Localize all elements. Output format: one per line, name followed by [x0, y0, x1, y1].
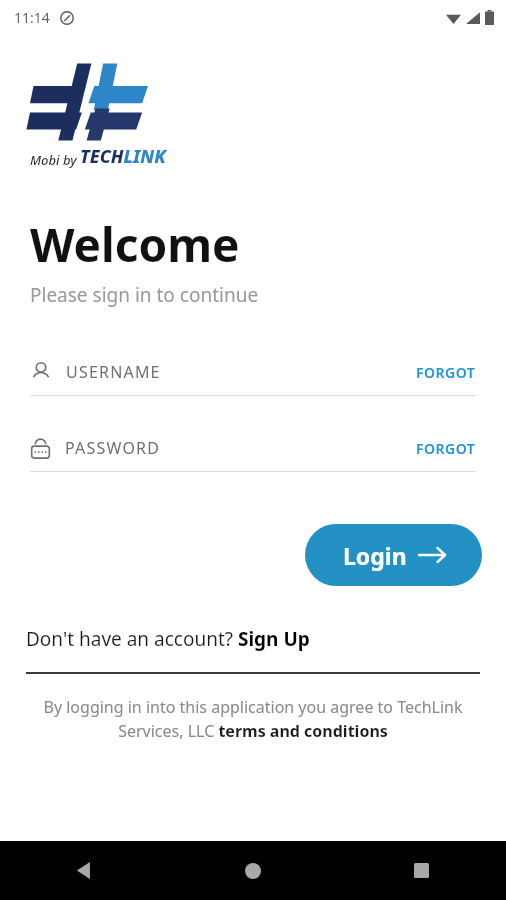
staticText: Login [343, 540, 407, 571]
button[interactable]: By logging in into this application you … [30, 696, 476, 742]
staticText: FORGOT [416, 363, 476, 382]
staticText: PASSWORD [65, 437, 161, 459]
staticText: By logging in into this application you … [30, 696, 476, 742]
staticText: Don't have an account? Sign Up [26, 626, 310, 652]
button[interactable]: Password [30, 436, 476, 472]
staticText: FORGOT [416, 439, 476, 458]
button[interactable]: FORGOT [416, 439, 476, 458]
other: Username [30, 360, 52, 384]
staticText: TECHLINK [80, 144, 166, 169]
button[interactable]: Username [30, 360, 476, 396]
staticText: Welcome [30, 213, 240, 276]
button[interactable]: Back [0, 841, 168, 900]
staticText: USERNAME [66, 361, 161, 383]
staticText: Mobi by [30, 151, 77, 169]
button[interactable]: Recent apps [337, 841, 506, 900]
staticText: Please sign in to continue [30, 282, 259, 308]
button[interactable]: Don't have an account? Sign Up [26, 626, 310, 652]
button[interactable]: Login [305, 524, 482, 586]
staticText: 11:14 [14, 8, 50, 27]
other: Password [30, 436, 51, 460]
button[interactable]: FORGOT [416, 363, 476, 382]
button[interactable]: Home [168, 841, 337, 900]
